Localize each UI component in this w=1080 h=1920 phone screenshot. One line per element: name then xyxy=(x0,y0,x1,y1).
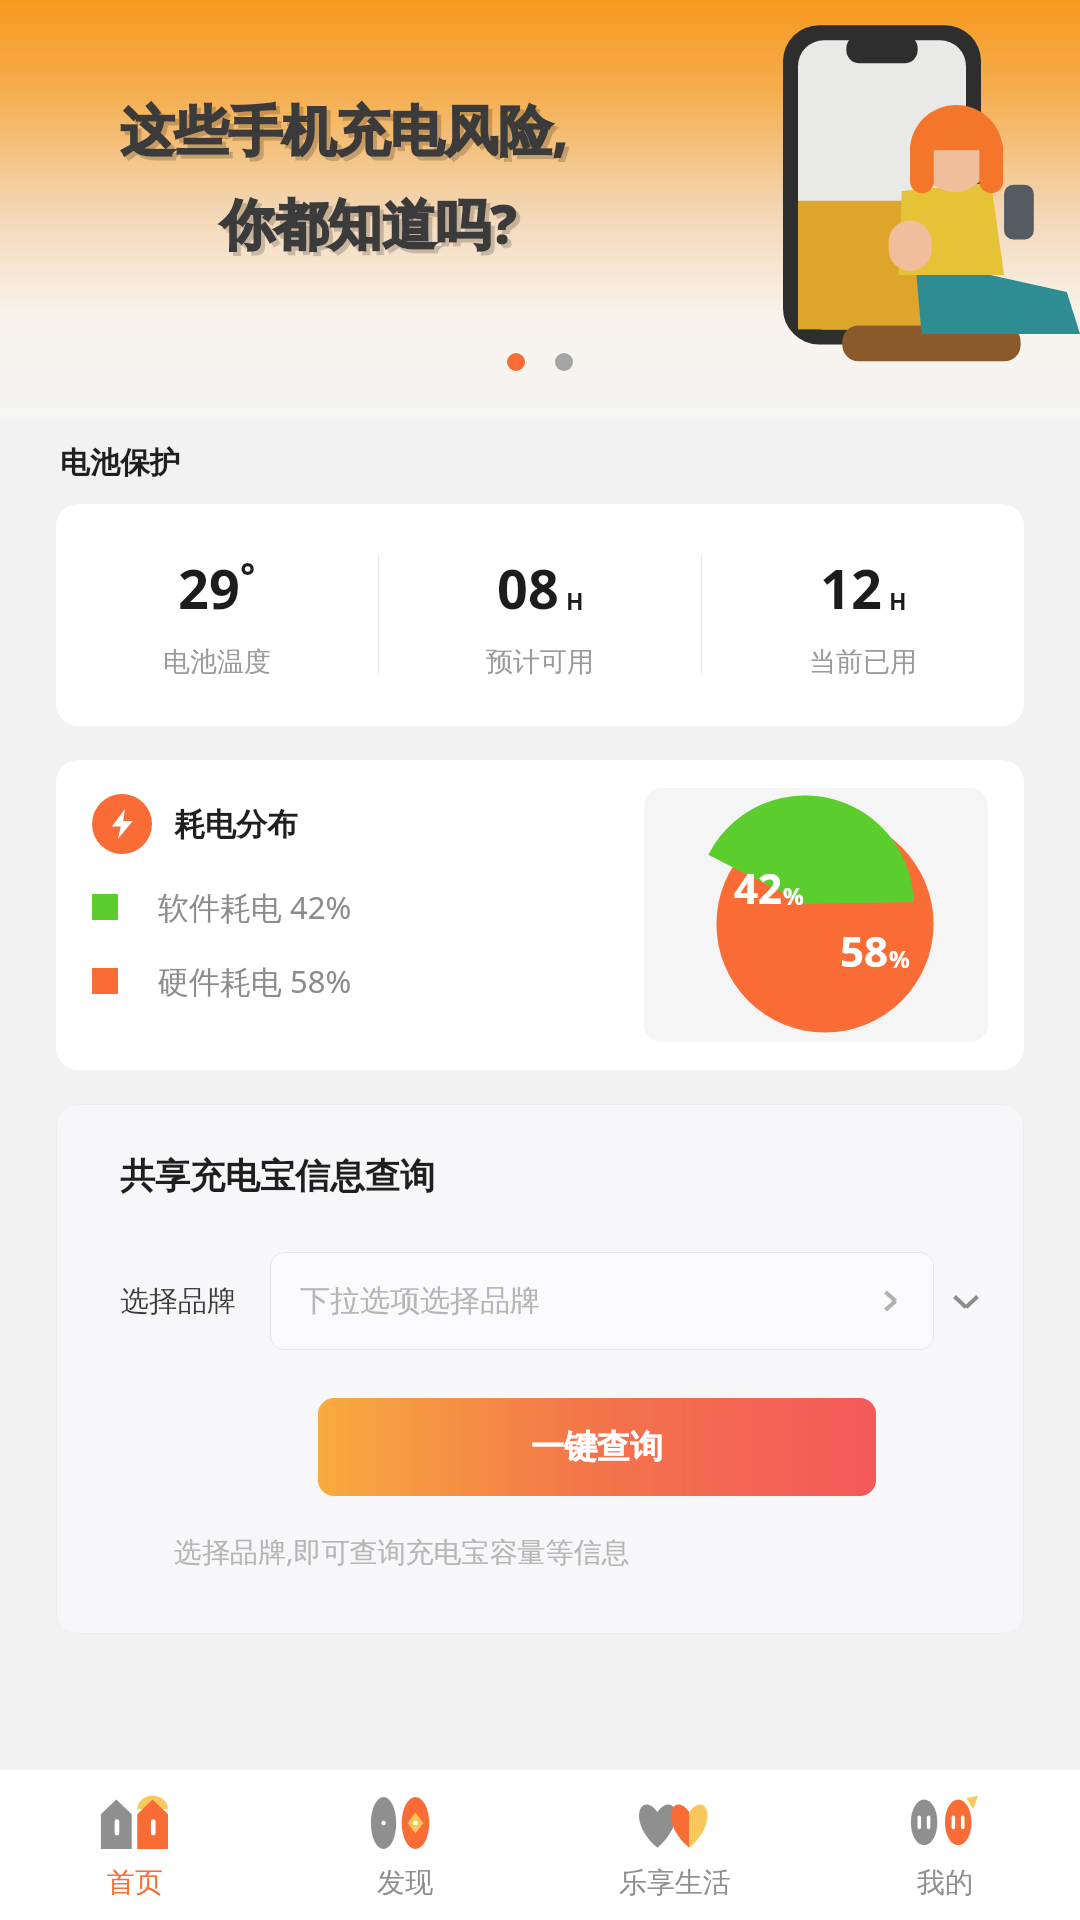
staticText: 42 xyxy=(734,859,783,916)
staticText: 乐享生活 xyxy=(619,1865,731,1900)
staticText: 12 xyxy=(820,551,882,625)
staticText: 选择品牌 xyxy=(120,1283,236,1320)
staticText: H xyxy=(566,585,584,616)
staticText: 选择品牌,即可查询充电宝容量等信息 xyxy=(174,1532,1024,1570)
staticText: 硬件耗电 58% xyxy=(158,960,352,1002)
staticText: 软件耗电 42% xyxy=(158,886,352,928)
staticText: 发现 xyxy=(377,1865,433,1900)
staticText: 29 xyxy=(178,551,240,625)
button[interactable]: 展开品牌列表 xyxy=(934,1269,998,1333)
staticText: 08 xyxy=(497,551,559,625)
staticText: 共享充电宝信息查询 xyxy=(120,1154,435,1198)
staticText: 首页 xyxy=(107,1865,163,1900)
button[interactable]: 发现 xyxy=(270,1770,540,1920)
staticText: 预计可用 xyxy=(486,645,594,679)
staticText: 电池温度 xyxy=(163,645,271,679)
staticText: 一键查询 xyxy=(531,1426,663,1468)
staticText: 这些手机充电风险, xyxy=(124,96,573,170)
staticText: % xyxy=(889,943,910,974)
staticText: 当前已用 xyxy=(809,645,917,679)
button[interactable]: 我的 xyxy=(810,1770,1080,1920)
staticText: 你都知道吗? xyxy=(220,186,518,260)
staticText: 你都知道吗? xyxy=(224,190,522,264)
button[interactable]: 下拉选项选择品牌 xyxy=(270,1252,934,1350)
staticText: H xyxy=(889,585,907,616)
staticText: 我的 xyxy=(917,1865,973,1900)
staticText: 电池保护 xyxy=(60,444,180,482)
staticText: 下拉选项选择品牌 xyxy=(300,1282,876,1320)
button[interactable]: 乐享生活 xyxy=(540,1770,810,1920)
button[interactable]: 一键查询 xyxy=(318,1398,876,1496)
staticText: 这些手机充电风险, xyxy=(120,92,569,166)
staticText: % xyxy=(783,880,804,911)
staticText: 耗电分布 xyxy=(174,805,298,844)
button[interactable]: 首页 xyxy=(0,1770,270,1920)
staticText: ° xyxy=(240,551,256,600)
staticText: 58 xyxy=(840,922,889,979)
